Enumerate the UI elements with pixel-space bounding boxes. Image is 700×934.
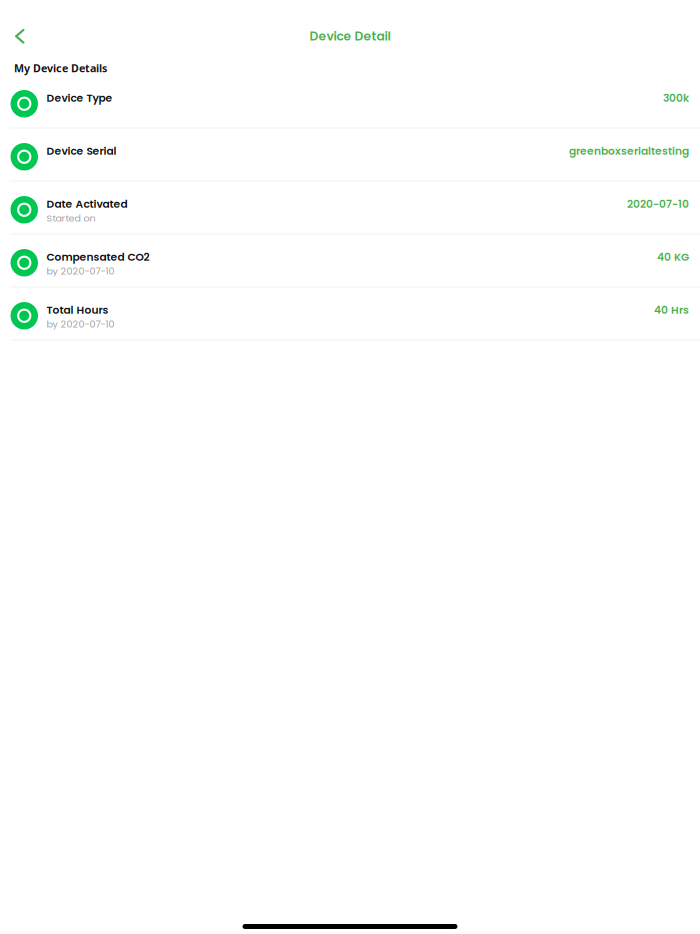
button[interactable]: Total Hours (0, 287, 700, 340)
staticText: 40 KG (657, 249, 689, 264)
staticText: by 2020-07-10 (46, 264, 114, 278)
button[interactable]: Device Type (0, 75, 700, 128)
button[interactable]: Compensated CO2 (0, 234, 700, 287)
staticText: Started on (46, 211, 95, 225)
staticText: by 2020-07-10 (46, 317, 114, 331)
button[interactable]: Device Serial (0, 128, 700, 181)
staticText: greenboxserialtesting (569, 143, 689, 158)
staticText: Device Type (46, 90, 112, 105)
staticText: 40 Hrs (654, 302, 689, 317)
staticText: Device Detail (309, 28, 390, 45)
staticText: Date Activated (46, 196, 127, 211)
staticText: Device Serial (46, 143, 116, 158)
staticText: 2020-07-10 (627, 196, 689, 211)
staticText: Compensated CO2 (46, 249, 149, 264)
button[interactable]: Date Activated (0, 181, 700, 234)
staticText: My Device Details (14, 61, 107, 75)
staticText: 300k (663, 90, 689, 105)
button[interactable]: Back (0, 19, 38, 54)
staticText: Total Hours (46, 302, 108, 317)
